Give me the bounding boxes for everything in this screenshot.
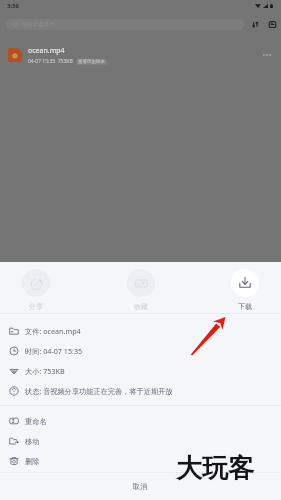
- button[interactable]: 删除: [9, 451, 281, 471]
- staticText: 文件: ocean.mp4: [25, 326, 81, 336]
- staticText: 取消: [133, 482, 148, 491]
- button[interactable]: View mode: [268, 20, 277, 29]
- button[interactable]: 状态: 音视频分享功能正在完善，将于近期开放: [9, 381, 281, 401]
- staticText: 时间: 04-07 15:35: [25, 346, 83, 356]
- staticText: 收藏: [134, 302, 148, 311]
- staticText: 删除: [25, 457, 40, 466]
- staticText: 下载: [238, 302, 252, 311]
- staticText: 移动: [25, 437, 40, 446]
- button[interactable]: 下载: [231, 262, 259, 311]
- staticText: 分享: [29, 302, 43, 311]
- button[interactable]: 分享: [22, 262, 50, 311]
- button[interactable]: 大小: 753KB: [9, 361, 281, 381]
- button[interactable]: Sort: [251, 20, 260, 29]
- staticText: 查看历史版本: [78, 59, 105, 65]
- button[interactable]: 收藏: [127, 262, 155, 311]
- button[interactable]: 重命名: [9, 411, 281, 431]
- button[interactable]: 文件: ocean.mp4: [9, 321, 281, 341]
- button[interactable]: 取消: [0, 473, 281, 500]
- staticText: 大玩客: [176, 452, 254, 485]
- staticText: 重命名: [25, 417, 47, 426]
- staticText: 3:36: [7, 2, 19, 10]
- staticText: 状态: 音视频分享功能正在完善，将于近期开放: [25, 386, 173, 396]
- button[interactable]: ocean.mp4: [8, 37, 274, 73]
- staticText: 04-07 15:35 753KB: [28, 58, 73, 65]
- staticText: 大小: 753KB: [25, 366, 65, 376]
- button[interactable]: 移动: [9, 431, 281, 451]
- button[interactable]: More options: [260, 48, 274, 62]
- staticText: 搜索云盘文件: [22, 21, 55, 28]
- button[interactable]: 时间: 04-07 15:35: [9, 341, 281, 361]
- staticText: ocean.mp4: [28, 46, 65, 56]
